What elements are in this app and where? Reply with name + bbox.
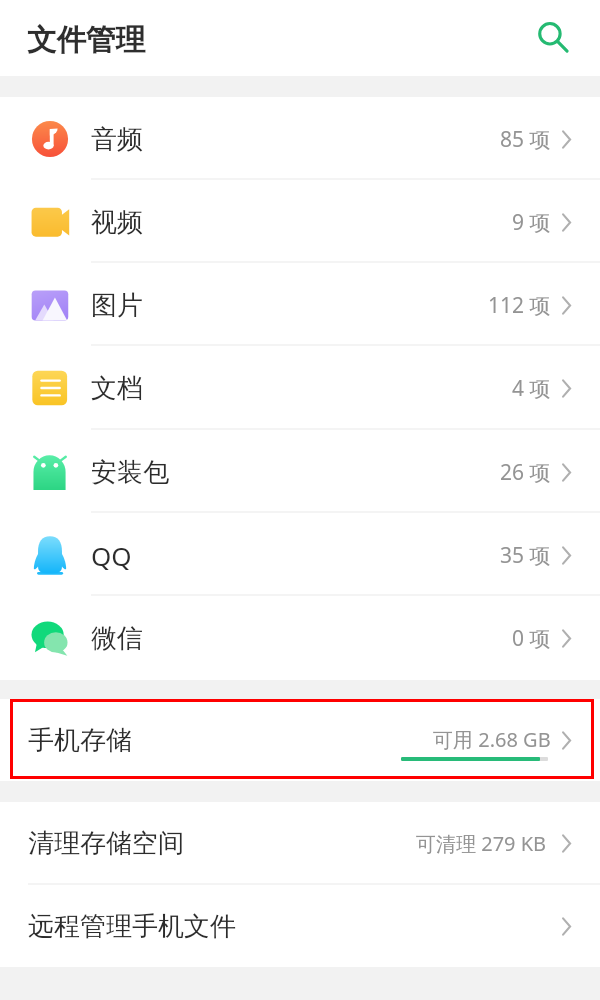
button[interactable]: 图片 [0,263,600,346]
staticText: 文件管理 [27,22,145,59]
button[interactable]: QQ [0,513,600,596]
button[interactable]: 远程管理手机文件 [0,885,600,967]
staticText: 图片 [91,289,143,322]
staticText: 微信 [91,622,143,655]
button[interactable]: 微信 [0,596,600,680]
staticText: QQ [91,538,132,573]
staticText: 9 项 [512,208,551,237]
button[interactable]: Search [526,12,578,64]
staticText: 远程管理手机文件 [28,910,236,943]
staticText: 安装包 [91,456,169,489]
button[interactable]: 视频 [0,180,600,263]
staticText: 85 项 [500,125,551,154]
button[interactable]: 手机存储 [0,699,600,781]
staticText: 可清理 279 KB [416,830,547,857]
staticText: 4 项 [512,374,551,403]
staticText: 清理存储空间 [28,827,184,860]
staticText: 文档 [91,372,143,405]
staticText: 0 项 [512,624,551,653]
staticText: 可用 2.68 GB [433,726,551,753]
staticText: 音频 [91,123,143,156]
button[interactable]: 音频 [0,97,600,180]
staticText: 35 项 [500,541,551,570]
staticText: 手机存储 [28,724,132,757]
button[interactable]: 清理存储空间 [0,802,600,885]
button[interactable]: 安装包 [0,430,600,513]
staticText: 26 项 [500,458,551,487]
staticText: 112 项 [488,291,551,320]
staticText: 视频 [91,206,143,239]
button[interactable]: 文档 [0,346,600,430]
